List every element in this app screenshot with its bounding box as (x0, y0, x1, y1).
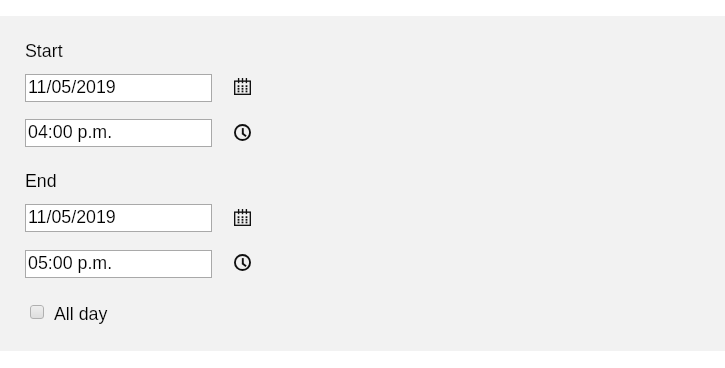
button[interactable]: Pick start date (234, 78, 251, 95)
staticText: End (25, 171, 57, 191)
button[interactable]: Pick end time (234, 254, 251, 271)
button[interactable]: All day (25, 303, 135, 329)
button[interactable]: Pick start time (234, 124, 251, 141)
button[interactable]: 05:00 p.m. (25, 250, 212, 278)
staticText: All day (54, 304, 108, 324)
staticText: 11/05/2019 (28, 77, 116, 97)
button[interactable]: 04:00 p.m. (25, 119, 212, 147)
staticText: 11/05/2019 (28, 207, 116, 227)
button[interactable]: 11/05/2019 (25, 74, 212, 102)
button[interactable]: Pick end date (234, 209, 251, 226)
button[interactable]: 11/05/2019 (25, 204, 212, 232)
staticText: 04:00 p.m. (28, 122, 113, 142)
staticText: Start (25, 41, 63, 61)
staticText: 05:00 p.m. (28, 253, 113, 273)
